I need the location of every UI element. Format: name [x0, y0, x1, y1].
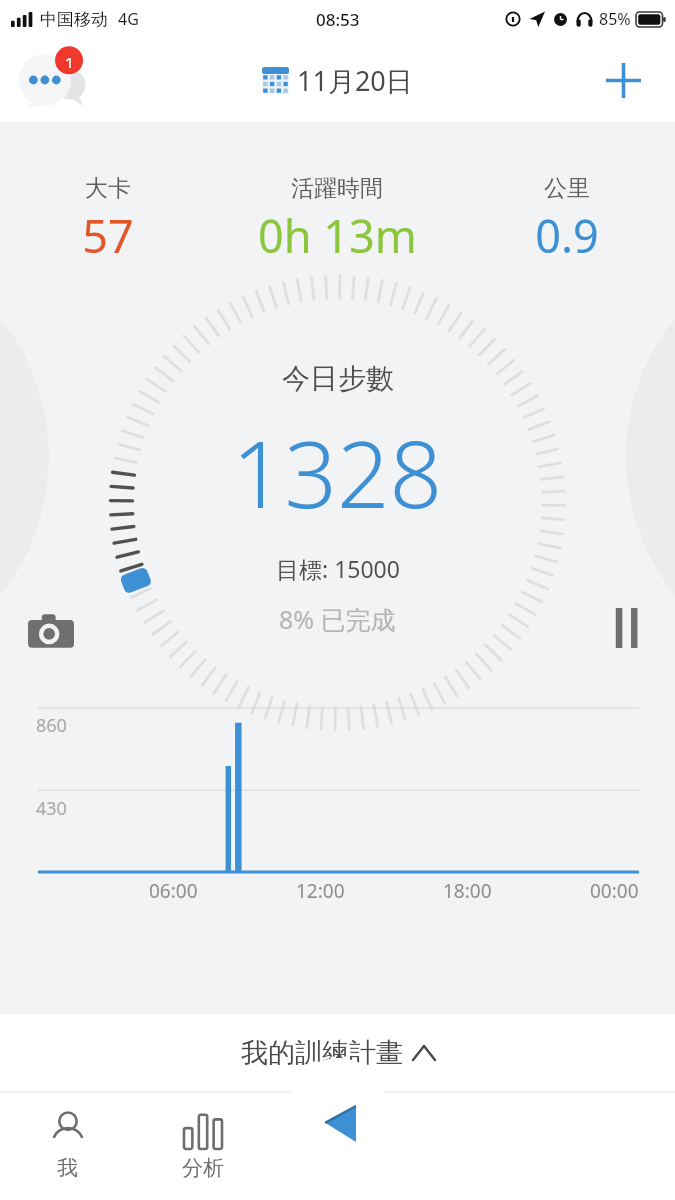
staticText: 8% 已完成	[279, 602, 396, 636]
staticText: 中国移动	[40, 9, 108, 30]
staticText: 12:00	[296, 878, 345, 904]
staticText: 大卡	[85, 174, 131, 203]
staticText: 0.9	[535, 205, 599, 266]
staticText: 11月20日	[297, 62, 413, 99]
button[interactable]: 大卡	[8, 174, 207, 266]
button[interactable]: 11月20日	[262, 62, 413, 99]
staticText: 08:53	[316, 8, 360, 31]
button[interactable]: Messages	[16, 51, 94, 109]
button[interactable]: 公里	[467, 174, 667, 266]
staticText: 公里	[544, 174, 590, 203]
button[interactable]: 我的訓練計畫	[0, 1014, 675, 1092]
staticText: 分析	[182, 1155, 224, 1181]
button[interactable]: 活躍時間	[207, 174, 467, 266]
button[interactable]: Pause	[607, 608, 647, 648]
staticText: 430	[36, 796, 67, 821]
staticText: 我的訓練計畫	[241, 1036, 403, 1070]
staticText: 1328	[232, 410, 443, 535]
staticText: 活躍時間	[291, 174, 383, 203]
staticText: 今日步數	[282, 361, 394, 396]
staticText: 00:00	[590, 878, 639, 904]
button[interactable]: 我	[0, 1092, 135, 1200]
button[interactable]: Add	[591, 48, 655, 112]
staticText: 4G	[118, 8, 139, 30]
staticText: 57	[82, 205, 134, 266]
button[interactable]: 860	[0, 696, 675, 916]
staticText: 18:00	[443, 878, 492, 904]
button[interactable]: Start activity	[288, 1058, 388, 1158]
staticText: 0h 13m	[258, 205, 417, 266]
button[interactable]: Camera	[28, 610, 74, 656]
button[interactable]: 分析	[135, 1092, 270, 1200]
staticText: 85%	[599, 8, 631, 30]
button[interactable]: Today's steps progress	[0, 276, 675, 696]
staticText: 目標: 15000	[276, 553, 400, 584]
staticText: 860	[36, 713, 67, 738]
staticText: 06:00	[149, 878, 198, 904]
staticText: 我	[57, 1155, 78, 1181]
staticText: 1	[65, 52, 74, 72]
